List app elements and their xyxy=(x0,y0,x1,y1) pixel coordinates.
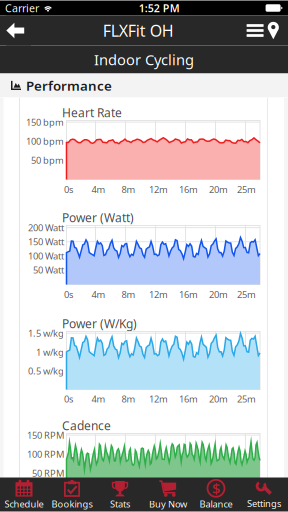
staticText: 0s xyxy=(64,496,73,509)
staticText: 100 RPM xyxy=(27,448,64,460)
staticText: Power (Watt) xyxy=(62,209,134,225)
staticText: 25m xyxy=(237,183,256,196)
staticText: 16m xyxy=(179,393,198,405)
staticText: 25m xyxy=(237,393,256,405)
staticText: 150 RPM xyxy=(27,429,64,441)
button[interactable]: Settings xyxy=(240,477,288,511)
staticText: 4m xyxy=(91,393,105,405)
staticText: Balance xyxy=(199,498,232,510)
staticText: Indoor Cycling xyxy=(94,50,194,69)
button[interactable]: $ xyxy=(192,477,240,511)
staticText: Stats xyxy=(110,498,130,510)
staticText: 50 RPM xyxy=(32,467,64,479)
staticText: 50 Watt xyxy=(33,264,64,276)
staticText: 12m xyxy=(149,288,168,301)
staticText: 200 Watt xyxy=(28,221,64,234)
button[interactable]: Buy Now xyxy=(144,477,192,511)
staticText: Cadence xyxy=(62,417,111,433)
staticText: 4m xyxy=(91,288,105,301)
staticText: Settings xyxy=(247,497,281,510)
button[interactable]: Stats xyxy=(96,477,144,511)
button[interactable]: Menu xyxy=(246,15,265,45)
staticText: Carrier xyxy=(5,1,39,15)
button[interactable]: Location xyxy=(267,15,280,45)
staticText: 4m xyxy=(91,496,105,509)
staticText: Heart Rate xyxy=(62,104,122,120)
staticText: 20m xyxy=(209,288,228,301)
staticText: Performance xyxy=(26,77,112,94)
staticText: 0.5 w/kg xyxy=(28,365,64,377)
staticText: 12m xyxy=(149,183,168,196)
staticText: 100 bpm xyxy=(26,135,64,147)
staticText: 12m xyxy=(149,496,168,509)
staticText: 100 Watt xyxy=(28,250,64,262)
staticText: 1.5 w/kg xyxy=(28,327,64,339)
staticText: 4m xyxy=(91,183,105,196)
button[interactable]: Bookings xyxy=(48,477,96,511)
staticText: 0s xyxy=(64,393,73,405)
staticText: FLXFit OH xyxy=(103,20,174,41)
staticText: 150 bpm xyxy=(26,116,64,128)
staticText: 1 w/kg xyxy=(36,346,64,358)
staticText: 16m xyxy=(179,288,198,301)
staticText: 25m xyxy=(237,288,256,301)
staticText: 8m xyxy=(121,496,135,509)
staticText: 16m xyxy=(179,496,198,509)
staticText: 20m xyxy=(209,496,228,509)
staticText: 8m xyxy=(121,288,135,301)
staticText: 20m xyxy=(209,393,228,405)
staticText: 0s xyxy=(64,183,73,196)
staticText: $ xyxy=(212,479,220,498)
button[interactable]: Schedule xyxy=(0,477,48,511)
staticText: 25m xyxy=(237,496,256,509)
staticText: 8m xyxy=(121,393,135,405)
staticText: 150 Watt xyxy=(28,235,64,248)
staticText: 1:52 PM xyxy=(139,1,180,15)
staticText: 12m xyxy=(149,393,168,405)
staticText: Power (W/Kg) xyxy=(62,315,137,331)
staticText: 8m xyxy=(121,183,135,196)
staticText: Buy Now xyxy=(149,498,187,510)
staticText: Bookings xyxy=(51,498,92,510)
staticText: Schedule xyxy=(4,498,43,510)
button[interactable]: Back xyxy=(6,15,31,45)
staticText: 0s xyxy=(64,288,73,301)
staticText: 20m xyxy=(209,183,228,196)
staticText: 50 bpm xyxy=(31,154,64,166)
staticText: 16m xyxy=(179,183,198,196)
